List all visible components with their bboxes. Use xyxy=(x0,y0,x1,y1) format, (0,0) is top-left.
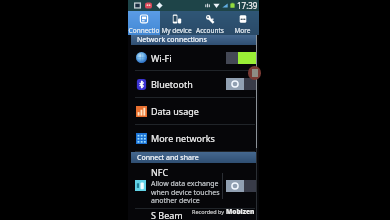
button[interactable]: Stop recording xyxy=(248,66,261,80)
button[interactable]: More xyxy=(226,11,259,35)
button[interactable]: S Beam xyxy=(128,209,259,220)
staticText: Connect and share xyxy=(137,153,199,163)
button[interactable]: Wi-Fi xyxy=(128,45,259,71)
staticText: Allow data exchange when device touches … xyxy=(151,179,220,205)
staticText: S Beam xyxy=(151,209,183,220)
staticText: NFC xyxy=(151,166,169,178)
button[interactable]: Data usage xyxy=(128,98,259,125)
staticText: Wi-Fi xyxy=(151,52,172,64)
staticText: More xyxy=(234,26,251,35)
staticText: Mobizen xyxy=(226,207,255,216)
button[interactable]: More networks xyxy=(128,125,259,152)
button[interactable]: Switch off xyxy=(226,180,256,192)
staticText: Network connections xyxy=(137,35,207,45)
staticText: Connections xyxy=(128,26,160,35)
staticText: My device xyxy=(161,26,192,35)
button[interactable]: Accounts xyxy=(193,11,226,35)
staticText: Bluetooth xyxy=(151,78,193,90)
button[interactable]: Connections xyxy=(128,11,160,35)
button[interactable]: Switch on xyxy=(226,52,256,64)
button[interactable]: My device xyxy=(160,11,193,35)
staticText: Recorded by xyxy=(192,208,226,215)
staticText: 17:39 xyxy=(237,0,258,11)
button[interactable]: Switch off xyxy=(226,78,256,90)
button[interactable]: Bluetooth xyxy=(128,71,259,98)
staticText: More networks xyxy=(151,132,215,144)
staticText: Data usage xyxy=(151,105,199,117)
staticText: Accounts xyxy=(196,26,224,35)
button[interactable]: NFC xyxy=(128,163,259,208)
